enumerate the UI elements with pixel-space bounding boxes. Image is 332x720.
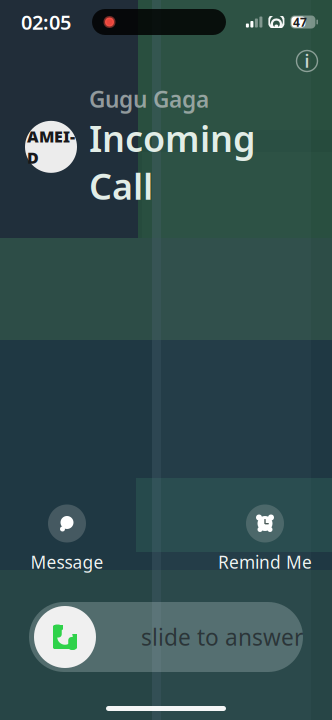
staticText: 47: [293, 14, 307, 30]
staticText: Remind Me: [218, 550, 312, 573]
staticText: slide to answer: [141, 622, 303, 652]
button[interactable]: Message: [12, 506, 122, 572]
staticText: i: [304, 49, 309, 72]
button[interactable]: slide to answer: [29, 602, 303, 672]
button[interactable]: Remind Me: [210, 506, 320, 572]
staticText: Gugu Gaga: [89, 84, 209, 114]
staticText: Incoming Call: [89, 114, 256, 210]
staticText: AMEID: [27, 126, 75, 168]
staticText: Message: [30, 550, 103, 573]
staticText: 02:05: [21, 9, 71, 35]
button[interactable]: Call info: [290, 44, 324, 78]
